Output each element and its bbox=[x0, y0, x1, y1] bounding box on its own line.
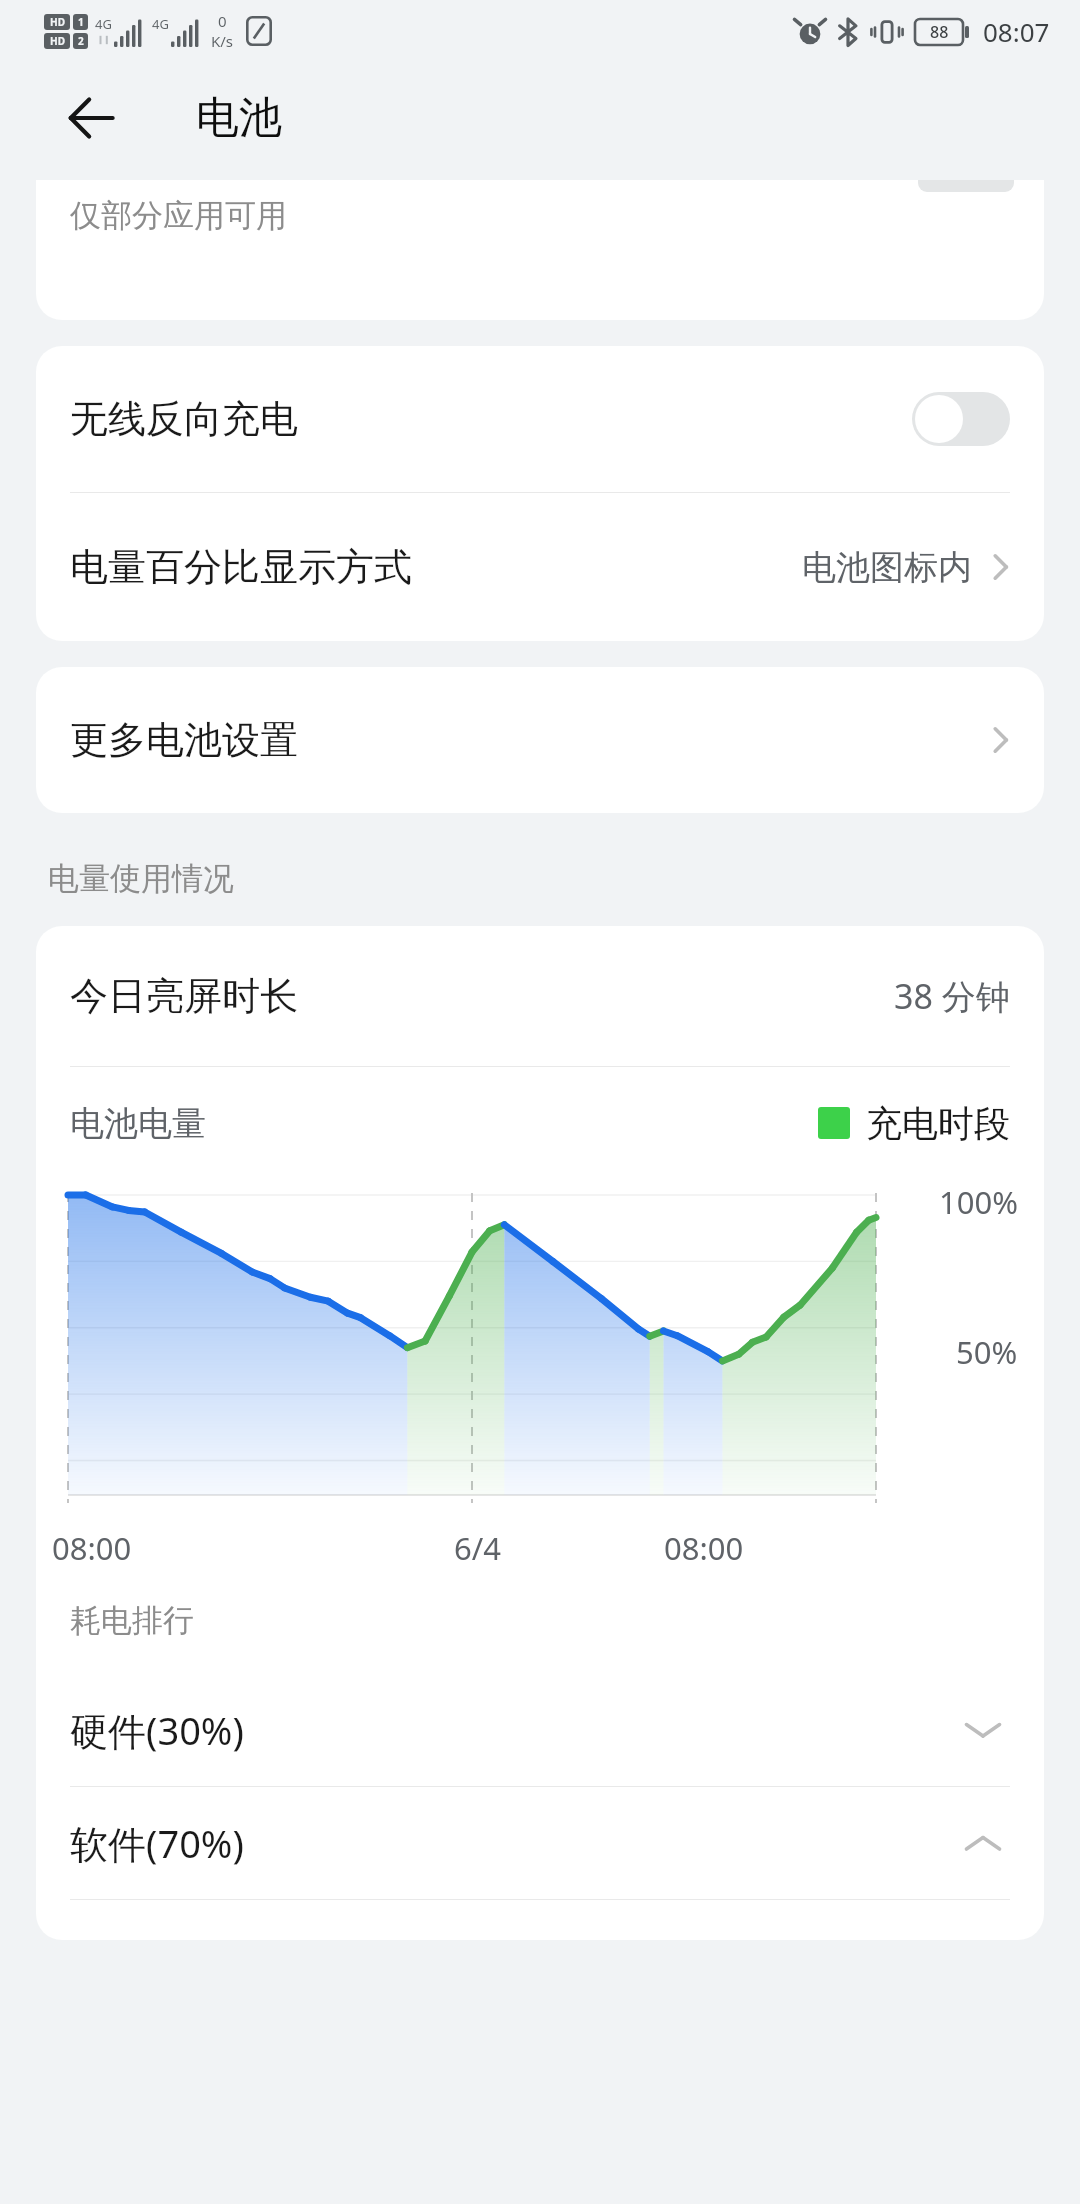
staticText: 软件(70%) bbox=[70, 1817, 960, 1869]
staticText: K/s bbox=[211, 31, 234, 51]
staticText: 充电时段 bbox=[866, 1101, 1010, 1146]
staticText: 电池 bbox=[196, 91, 282, 145]
staticText: 电池电量 bbox=[70, 1102, 818, 1145]
staticText: 4G bbox=[152, 15, 169, 33]
staticText: 08:07 bbox=[983, 14, 1050, 49]
staticText: 6/4 bbox=[454, 1527, 501, 1569]
other: Bluetooth bbox=[837, 18, 859, 46]
staticText: 08:00 bbox=[52, 1527, 132, 1569]
button[interactable]: Wireless reverse charging bbox=[912, 392, 1010, 446]
staticText: 4G bbox=[95, 15, 112, 33]
staticText: 电量使用情况 bbox=[48, 859, 234, 898]
staticText: 0 bbox=[218, 11, 227, 31]
button[interactable]: 仅部分应用可用 bbox=[36, 180, 1044, 320]
button[interactable]: Back bbox=[52, 79, 130, 157]
staticText: 电池图标内 bbox=[802, 546, 972, 589]
other: NFC bbox=[246, 16, 272, 46]
staticText: HD bbox=[50, 15, 65, 29]
staticText: 88 bbox=[930, 21, 949, 43]
staticText: 电量百分比显示方式 bbox=[70, 543, 802, 591]
button[interactable]: 电量百分比显示方式 bbox=[36, 493, 1044, 641]
button[interactable]: 软件(70%) bbox=[36, 1787, 1044, 1899]
button[interactable]: 无线反向充电 bbox=[36, 346, 1044, 492]
staticText: 08:00 bbox=[664, 1527, 744, 1569]
staticText: 1 bbox=[78, 15, 84, 29]
button[interactable]: 今日亮屏时长 bbox=[36, 926, 1044, 1066]
button[interactable]: 硬件(30%) bbox=[36, 1674, 1044, 1786]
other: Alarm bbox=[796, 18, 824, 46]
button[interactable]: 更多电池设置 bbox=[36, 667, 1044, 813]
staticText: 100% bbox=[939, 1181, 1018, 1223]
staticText: 仅部分应用可用 bbox=[70, 196, 287, 235]
staticText: 50% bbox=[956, 1331, 1018, 1373]
staticText: 无线反向充电 bbox=[70, 395, 912, 443]
staticText: 2 bbox=[78, 34, 84, 48]
staticText: HD bbox=[50, 34, 65, 48]
other: Vibrate bbox=[872, 18, 902, 46]
staticText: 耗电排行 bbox=[70, 1601, 194, 1640]
staticText: 硬件(30%) bbox=[70, 1704, 960, 1756]
staticText: 更多电池设置 bbox=[70, 716, 980, 764]
staticText: 今日亮屏时长 bbox=[70, 972, 894, 1020]
staticText: 38 分钟 bbox=[894, 973, 1010, 1019]
